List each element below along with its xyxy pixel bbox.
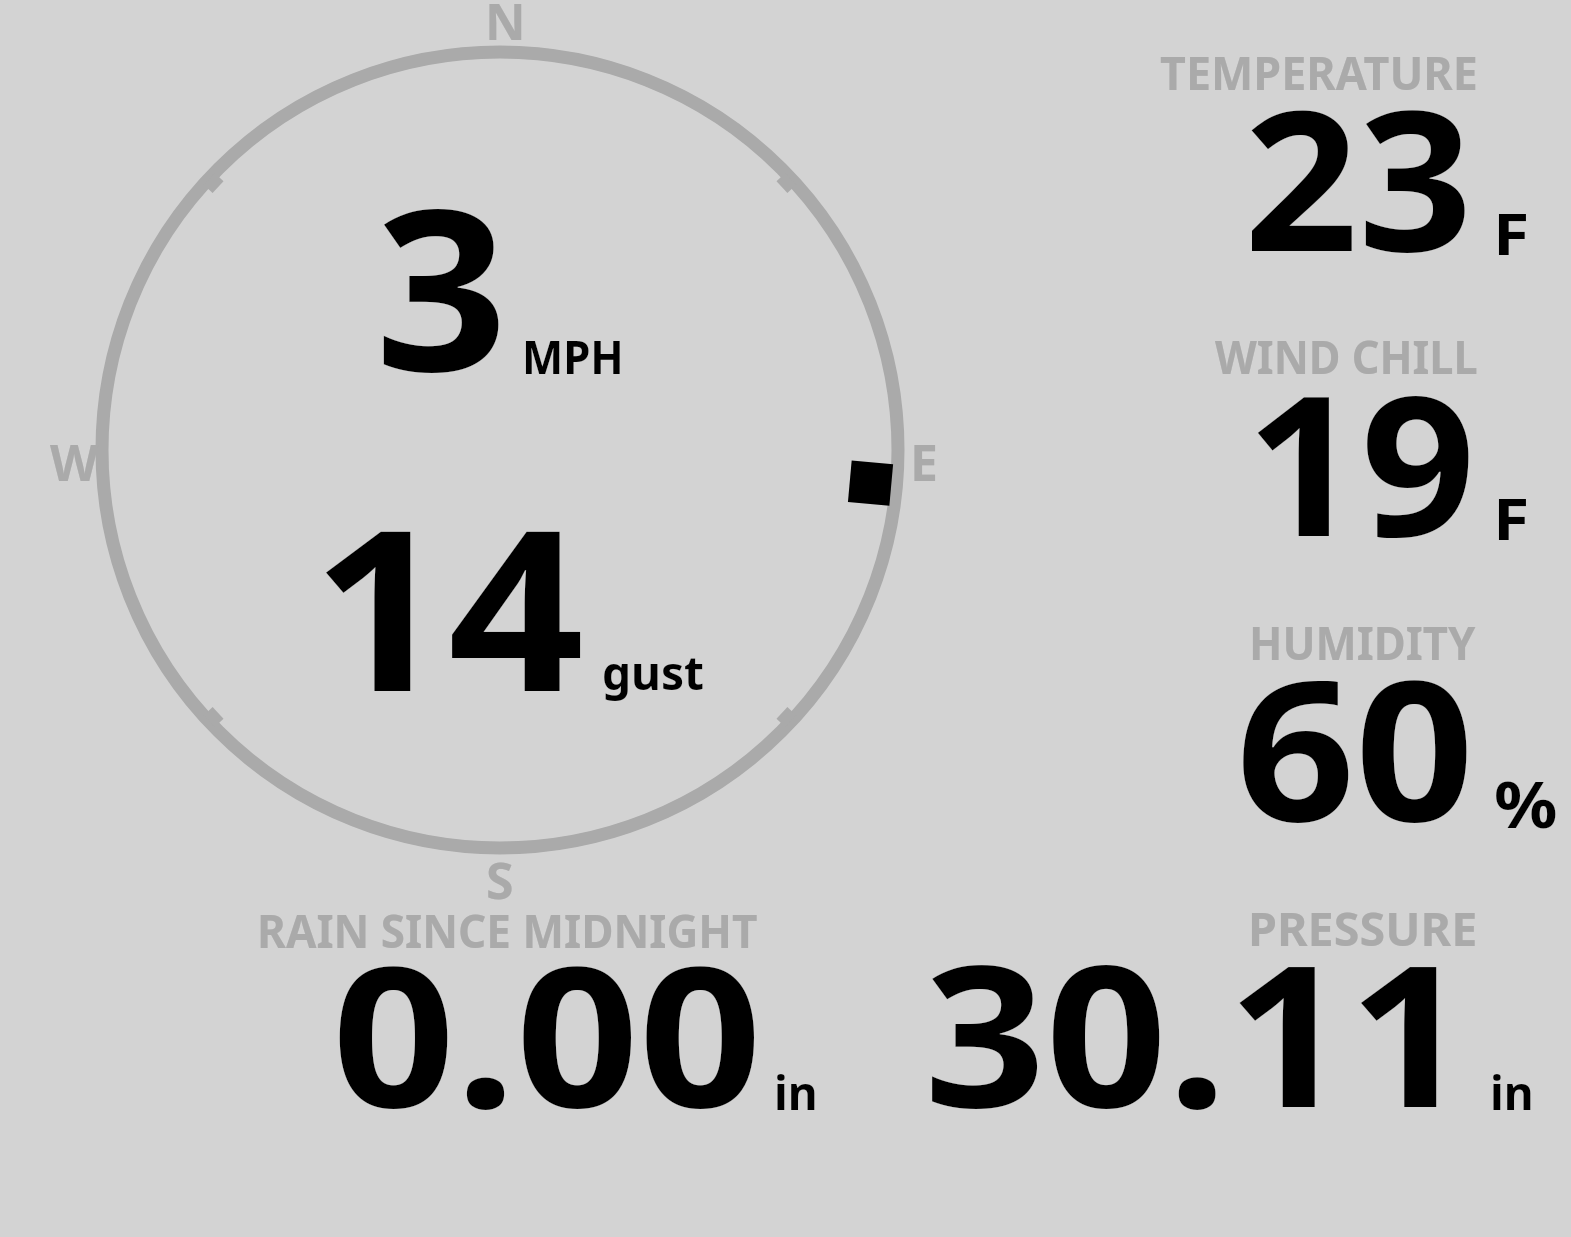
staticText: F	[1493, 478, 1529, 557]
staticText: 3	[375, 133, 508, 437]
staticText: HUMIDITY	[1249, 611, 1476, 674]
staticText: N	[485, 0, 526, 55]
button[interactable]: Humidity 60 percent	[1150, 620, 1560, 830]
staticText: PRESSURE	[1248, 897, 1477, 960]
staticText: gust	[602, 641, 705, 704]
staticText: S	[486, 846, 514, 914]
button[interactable]: Temperature 23 F	[1150, 50, 1550, 260]
staticText: WIND CHILL	[1215, 325, 1478, 388]
staticText: MPH	[522, 325, 625, 388]
staticText: in	[774, 1061, 818, 1124]
staticText: F	[1493, 193, 1529, 272]
staticText: E	[910, 428, 938, 496]
staticText: TEMPERATURE	[1160, 41, 1479, 104]
staticText: in	[1490, 1061, 1534, 1124]
staticText: 30.11	[924, 899, 1470, 1165]
button[interactable]: Pressure 30.11 inches	[900, 908, 1540, 1113]
staticText: 23	[1244, 44, 1473, 308]
staticText: W	[50, 428, 99, 496]
staticText: 0.00	[332, 900, 763, 1164]
button[interactable]: Wind compass	[95, 45, 905, 855]
button[interactable]: Wind chill 19 F	[1150, 335, 1550, 545]
staticText: 60	[1236, 614, 1474, 878]
staticText: 14	[312, 453, 585, 757]
staticText: RAIN SINCE MIDNIGHT	[257, 899, 758, 962]
button[interactable]: Rain since midnight 0.00 inches	[250, 908, 820, 1113]
staticText: 19	[1246, 329, 1476, 593]
staticText: %	[1494, 760, 1558, 847]
